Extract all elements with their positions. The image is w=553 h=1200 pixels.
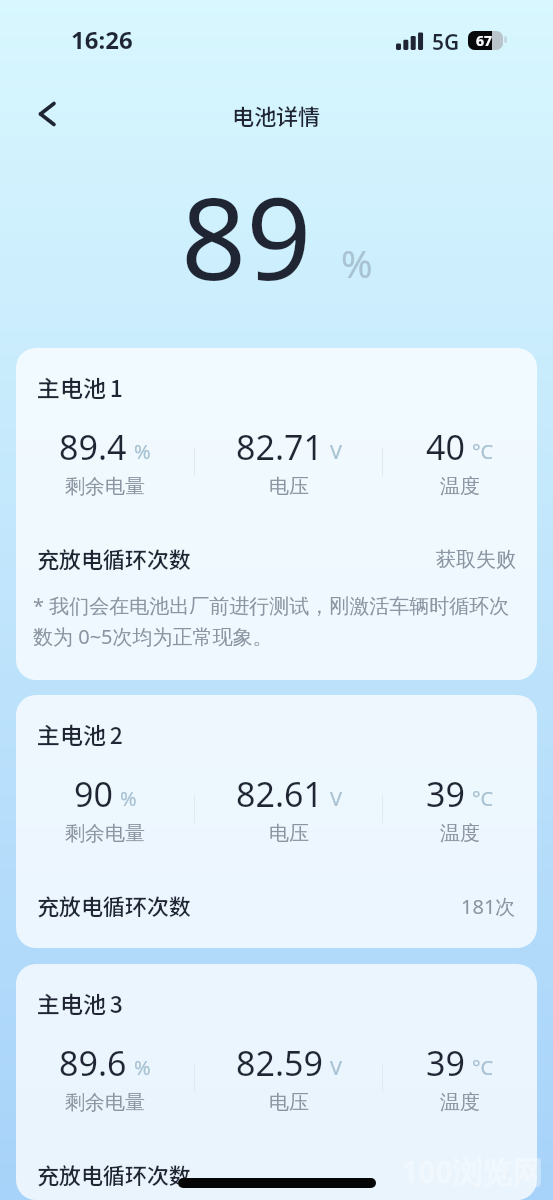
staticText: % [134,438,151,465]
staticText: 温度 [440,474,480,499]
staticText: 电压 [269,821,309,846]
staticText: 89.6 [59,1040,127,1086]
staticText: 电压 [269,474,309,499]
staticText: V [330,1054,342,1081]
staticText: 5G [432,28,460,57]
staticText: 40 [426,424,465,470]
staticText: °C [472,785,494,812]
staticText: 充放电循环次数 [37,891,192,921]
button[interactable]: 主电池 3 [16,964,537,1200]
button[interactable]: Back [25,92,69,136]
staticText: V [330,438,342,465]
staticText: 获取失败 [436,547,516,572]
staticText: 82.71 [236,424,323,470]
staticText: 16:26 [71,23,133,56]
staticText: 82.61 [236,771,323,817]
staticText: 剩余电量 [65,821,145,846]
staticText: 181次 [461,893,516,920]
staticText: 温度 [440,1090,480,1115]
staticText: % [134,1054,151,1081]
staticText: % [120,785,137,812]
staticText: 充放电循环次数 [37,544,192,574]
staticText: °C [472,438,494,465]
staticText: 充放电循环次数 [37,1160,192,1190]
staticText: 温度 [440,821,480,846]
staticText: 89 [181,158,312,313]
staticText: % [341,237,373,289]
button[interactable]: 主电池 2 [16,695,537,948]
staticText: 39 [426,1040,465,1086]
staticText: °C [472,1054,494,1081]
staticText: 100浏览网 [401,1151,543,1192]
staticText: 90 [74,771,113,817]
staticText: 67 [476,31,493,50]
staticText: 39 [426,771,465,817]
staticText: 主电池 2 [37,719,123,750]
staticText: * 我们会在电池出厂前进行测试，刚激活车辆时循环次数为 0~5次均为正常现象。 [33,589,511,651]
staticText: 89.4 [59,424,127,470]
staticText: 电压 [269,1090,309,1115]
staticText: 剩余电量 [65,1090,145,1115]
staticText: 电池详情 [232,101,321,131]
staticText: 82.59 [236,1040,323,1086]
button[interactable]: 主电池 1 [16,348,537,680]
staticText: 主电池 3 [37,988,123,1019]
staticText: 剩余电量 [65,474,145,499]
staticText: V [330,785,342,812]
staticText: 主电池 1 [37,372,123,403]
